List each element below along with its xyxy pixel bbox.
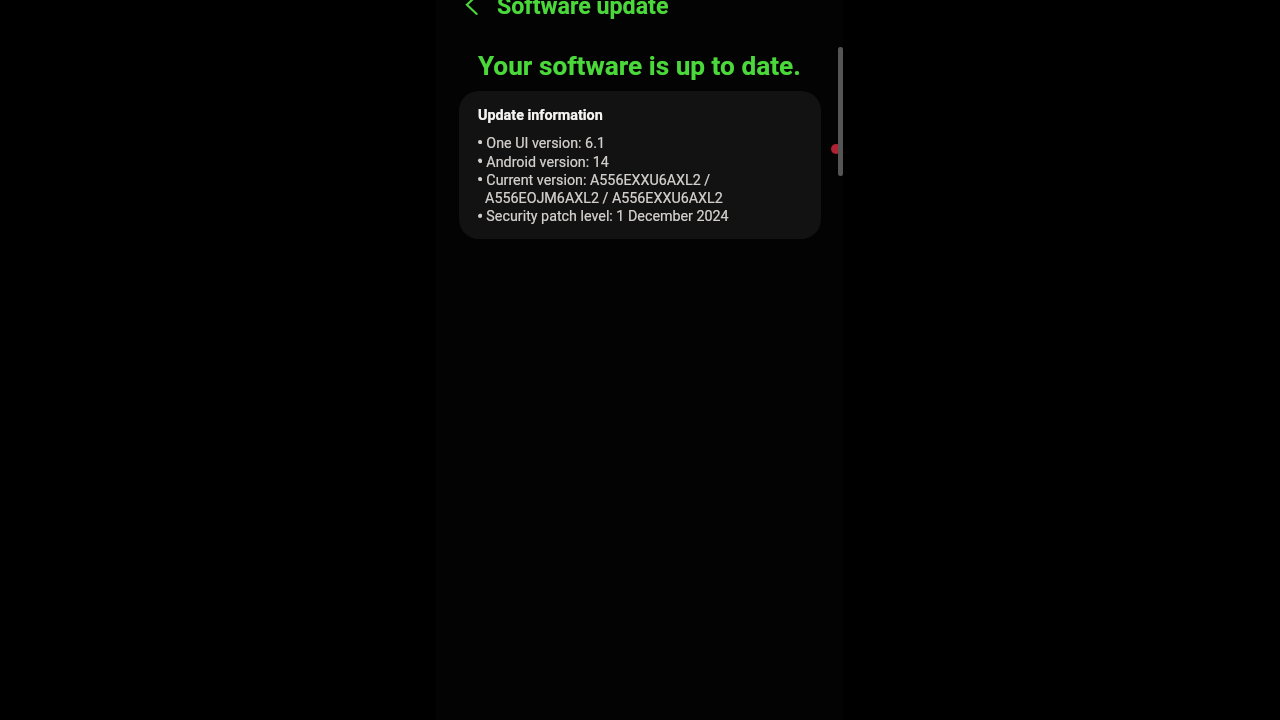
- staticText: Software update: [497, 0, 669, 19]
- staticText: • One UI version: 6.1 • Android version:…: [478, 135, 729, 224]
- staticText: Your software is up to date.: [478, 51, 801, 82]
- staticText: Update information: [478, 107, 603, 124]
- button[interactable]: Navigate up: [443, 0, 487, 27]
